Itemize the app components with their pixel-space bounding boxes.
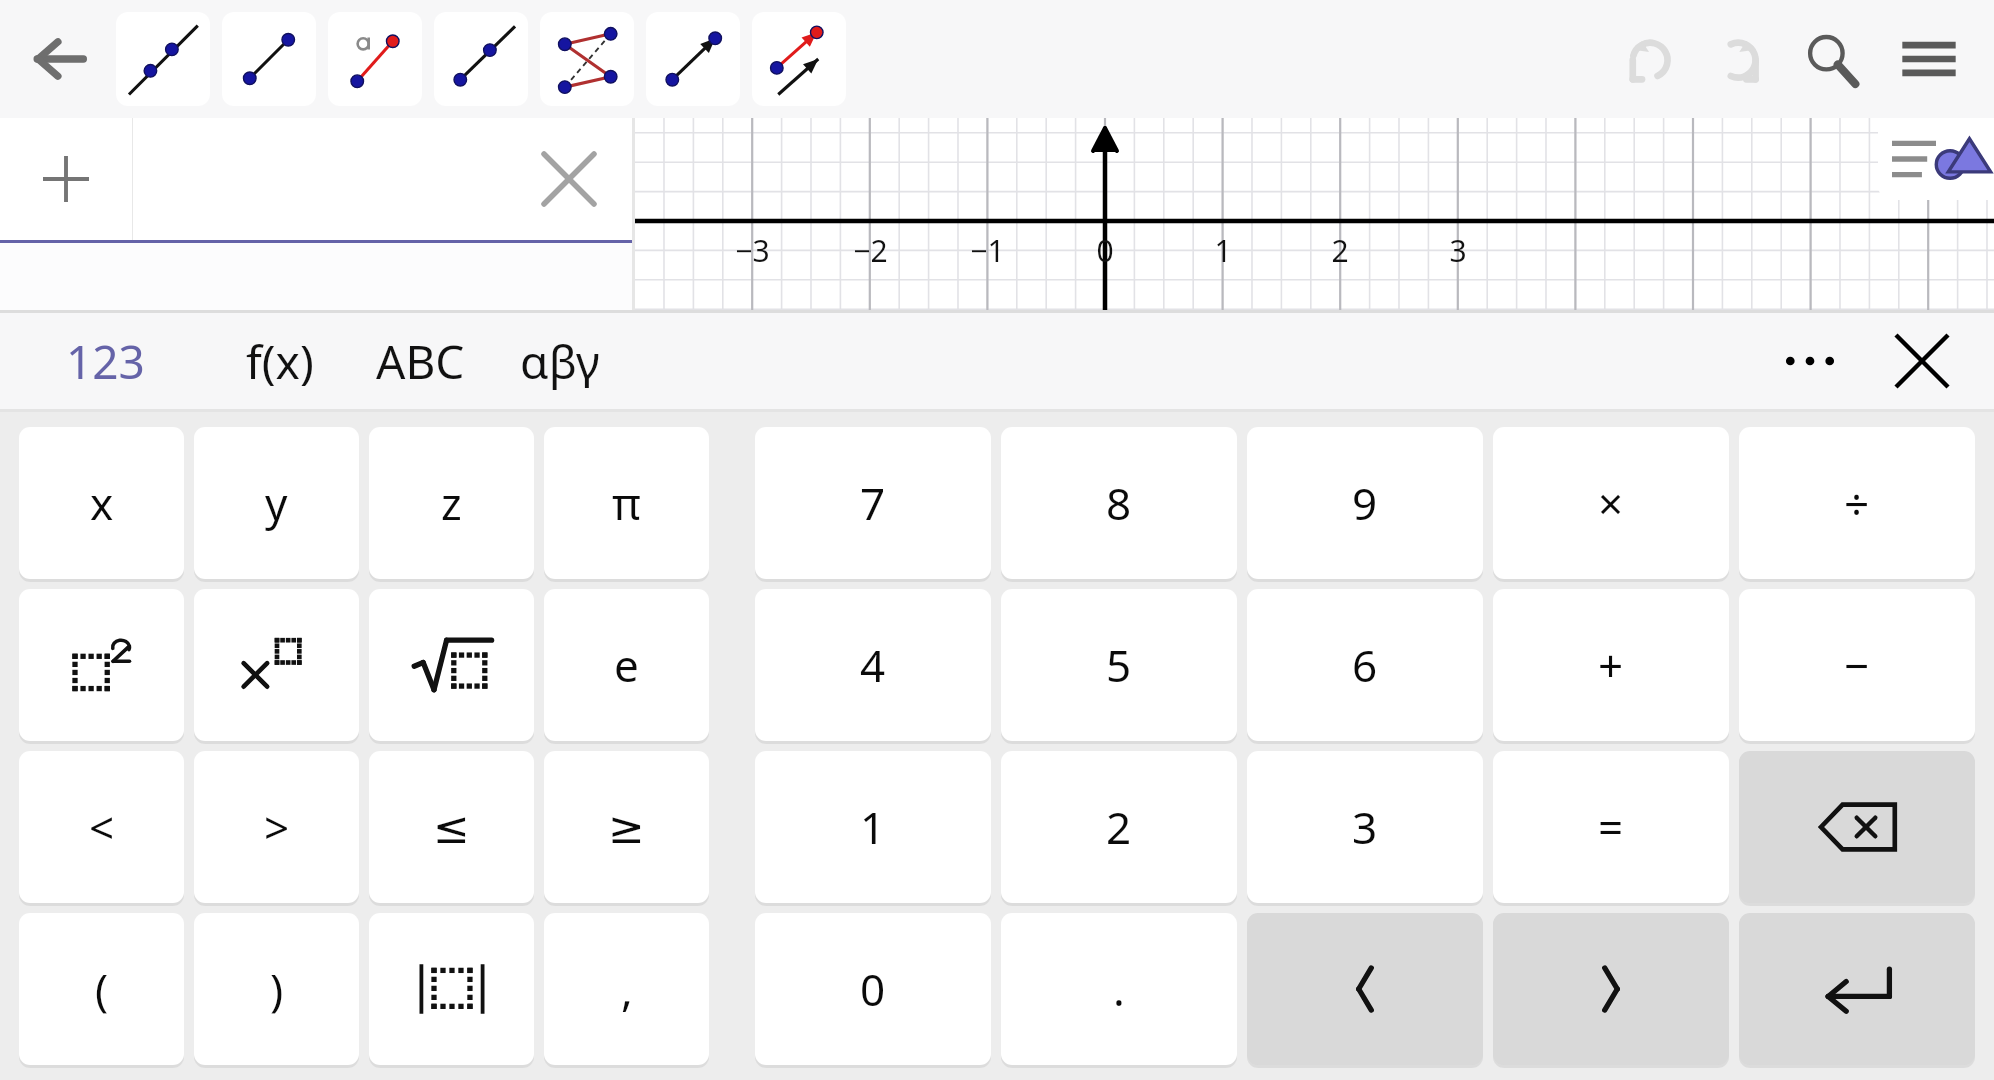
button[interactable]: αβγ [490,313,630,409]
button[interactable]: 5 [1001,589,1237,741]
staticText: . [1113,959,1125,1019]
button[interactable]: 2 [1001,751,1237,903]
button[interactable]: 8 [1001,427,1237,579]
staticText: 2 [1331,230,1349,271]
staticText: −1 [970,230,1005,271]
button[interactable]: 4 [755,589,991,741]
button[interactable]: More options [1762,313,1858,409]
staticText: x [90,473,114,533]
button[interactable]: ≤ [369,751,534,903]
staticText: ≥ [608,802,645,853]
button[interactable]: y [194,427,359,579]
button[interactable]: ÷ [1739,427,1975,579]
staticText: z [441,473,462,533]
staticText: 8 [1106,473,1132,533]
staticText: 7 [860,473,886,533]
button[interactable]: Enter [1739,913,1975,1065]
button[interactable]: > [194,751,359,903]
staticText: 5 [1106,635,1132,695]
staticText: π [612,473,641,533]
button[interactable]: Undo [1610,20,1688,98]
button[interactable]: 1 [755,751,991,903]
staticText: e [614,635,639,695]
button[interactable]: Tool 6 [646,12,740,106]
button[interactable]: 7 [755,427,991,579]
button[interactable]: Tool 5 [540,12,634,106]
staticText: 3 [1352,797,1378,857]
button[interactable]: Style bar [1878,118,1994,200]
button[interactable]: Power [194,589,359,741]
button[interactable]: 123 [0,313,210,409]
staticText: , [621,959,633,1019]
staticText: < [89,797,115,857]
button[interactable]: < [19,751,184,903]
button[interactable]: 9 [1247,427,1483,579]
button[interactable]: Add row [0,118,132,240]
staticText: − [1844,635,1870,695]
staticText: αβγ [520,330,600,393]
button[interactable]: Tool 3 [328,12,422,106]
staticText: 9 [1352,473,1378,533]
staticText: + [1598,635,1624,695]
staticText: 6 [1352,635,1378,695]
button[interactable]: 3 [1247,751,1483,903]
button[interactable]: Search [1792,20,1870,98]
button[interactable]: Move left [1247,913,1483,1065]
button[interactable]: e [544,589,709,741]
button[interactable]: Menu [1890,20,1968,98]
staticText: ) [270,959,284,1019]
button[interactable]: × [1493,427,1729,579]
staticText: × [1598,473,1624,533]
button[interactable]: Tool 7 [752,12,846,106]
button[interactable]: z [369,427,534,579]
button[interactable]: Absolute value [369,913,534,1065]
staticText: ( [95,959,109,1019]
staticText: y [265,473,288,533]
button[interactable]: f(x) [210,313,350,409]
staticText: 1 [860,797,886,857]
button[interactable]: Backspace [1739,751,1975,903]
button[interactable]: . [1001,913,1237,1065]
button[interactable]: x [19,427,184,579]
button[interactable]: = [1493,751,1729,903]
button[interactable]: ≥ [544,751,709,903]
button[interactable]: ) [194,913,359,1065]
button[interactable]: 0 [755,913,991,1065]
button[interactable]: π [544,427,709,579]
staticText: 2 [1106,797,1132,857]
button[interactable]: Redo [1698,20,1776,98]
staticText: −2 [853,230,888,271]
button[interactable]: Clear input [514,124,624,234]
button[interactable]: Tool 2 [222,12,316,106]
button[interactable]: Tool 1 [116,12,210,106]
staticText: = [1598,797,1624,857]
staticText: ≤ [433,802,470,853]
staticText: 123 [66,330,145,393]
button[interactable]: ( [19,913,184,1065]
button[interactable]: + [1493,589,1729,741]
button[interactable]: Tool 4 [434,12,528,106]
staticText: f(x) [246,330,314,393]
button[interactable]: Close keyboard [1874,313,1970,409]
button[interactable]: Square [19,589,184,741]
button[interactable]: Square root [369,589,534,741]
button[interactable]: ABC [350,313,490,409]
staticText: 3 [1449,230,1467,271]
staticText: ABC [376,330,465,393]
staticText: 0 [860,959,886,1019]
button[interactable]: − [1739,589,1975,741]
staticText: > [264,797,290,857]
staticText: −3 [735,230,770,271]
staticText: ÷ [1844,473,1870,533]
staticText: 4 [860,635,886,695]
button[interactable]: Move right [1493,913,1729,1065]
staticText: 1 [1214,230,1232,271]
button[interactable]: Back [24,23,96,95]
button[interactable]: , [544,913,709,1065]
button[interactable]: 6 [1247,589,1483,741]
staticText: 0 [1096,230,1114,271]
